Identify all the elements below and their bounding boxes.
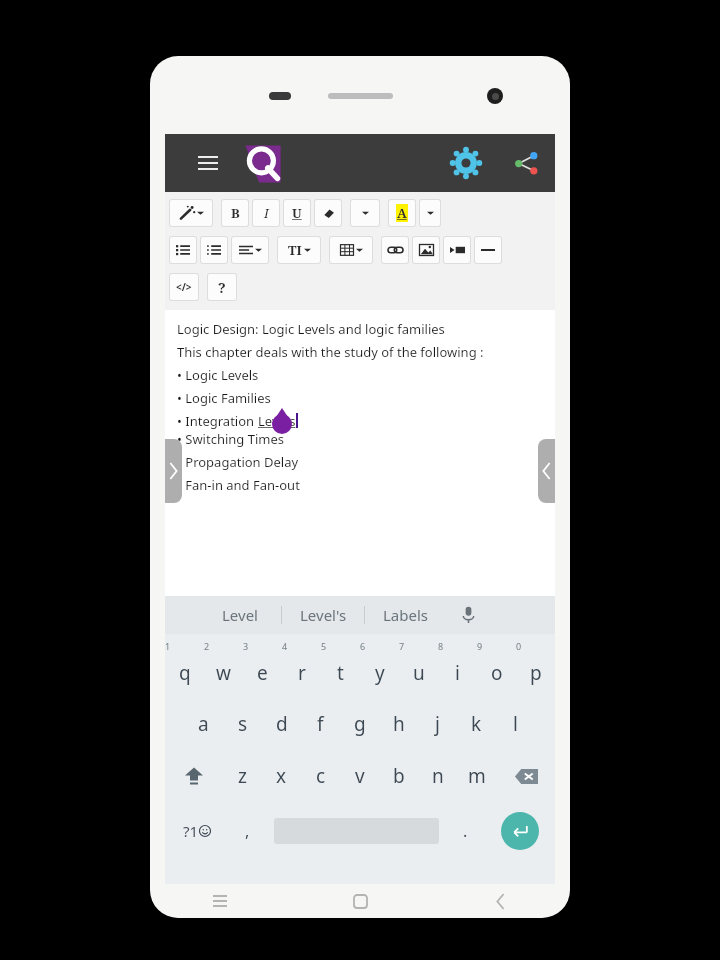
button[interactable]: .: [446, 802, 485, 860]
button[interactable]: 1: [165, 640, 204, 698]
button[interactable]: 0: [516, 640, 555, 698]
button[interactable]: Shift: [165, 750, 223, 802]
staticText: u: [413, 660, 425, 686]
staticText: TI: [288, 241, 302, 259]
staticText: • Fan-in and Fan-out: [177, 476, 300, 494]
button[interactable]: ?: [208, 274, 236, 300]
button[interactable]: [475, 237, 501, 263]
staticText: s: [238, 711, 248, 737]
button[interactable]: k: [457, 698, 496, 750]
staticText: x: [276, 763, 287, 789]
staticText: y: [375, 660, 385, 686]
staticText: f: [317, 711, 324, 737]
button[interactable]: B: [222, 200, 248, 226]
staticText: 7: [399, 640, 405, 652]
button[interactable]: 4: [282, 640, 321, 698]
button[interactable]: I: [253, 200, 279, 226]
staticText: v: [355, 763, 365, 789]
button[interactable]: h: [379, 698, 418, 750]
button[interactable]: l: [496, 698, 535, 750]
button[interactable]: ?1: [165, 802, 228, 860]
button[interactable]: m: [457, 750, 496, 802]
button[interactable]: Level's: [282, 596, 364, 634]
button[interactable]: 5: [321, 640, 360, 698]
button[interactable]: 2: [204, 640, 243, 698]
staticText: k: [471, 711, 482, 737]
button[interactable]: v: [340, 750, 379, 802]
staticText: Logic Design: Logic Levels and logic fam…: [177, 320, 445, 338]
button[interactable]: Backspace: [496, 750, 555, 802]
staticText: ?: [218, 278, 226, 297]
button[interactable]: A: [389, 200, 415, 226]
staticText: </>: [176, 280, 192, 294]
staticText: 6: [360, 640, 366, 652]
button[interactable]: ,: [228, 802, 267, 860]
button[interactable]: [315, 200, 341, 226]
staticText: • Logic Families: [177, 389, 271, 407]
staticText: ?1: [183, 821, 199, 841]
staticText: Level: [222, 605, 258, 625]
button[interactable]: [170, 237, 196, 263]
button[interactable]: n: [418, 750, 457, 802]
staticText: 2: [204, 640, 210, 652]
staticText: This chapter deals with the study of the…: [177, 343, 484, 361]
button[interactable]: g: [340, 698, 379, 750]
button[interactable]: [351, 200, 379, 226]
button[interactable]: [413, 237, 439, 263]
button[interactable]: j: [418, 698, 457, 750]
button[interactable]: 7: [399, 640, 438, 698]
button[interactable]: App logo: [243, 144, 283, 184]
button[interactable]: b: [379, 750, 418, 802]
button[interactable]: Share: [497, 134, 555, 192]
button[interactable]: x: [262, 750, 301, 802]
button[interactable]: 9: [477, 640, 516, 698]
button[interactable]: Previous page: [538, 439, 555, 503]
staticText: c: [316, 763, 326, 789]
staticText: 0: [516, 640, 522, 652]
button[interactable]: d: [262, 698, 301, 750]
staticText: • Propagation Delay: [177, 453, 299, 471]
button[interactable]: [382, 237, 408, 263]
staticText: d: [276, 711, 288, 737]
staticText: • Switching Times: [177, 430, 285, 448]
button[interactable]: s: [223, 698, 262, 750]
button[interactable]: [170, 200, 212, 226]
button[interactable]: Space: [267, 802, 446, 860]
staticText: z: [238, 763, 247, 789]
button[interactable]: </>: [170, 274, 198, 300]
button[interactable]: 3: [243, 640, 282, 698]
button[interactable]: 8: [438, 640, 477, 698]
staticText: .: [463, 820, 468, 842]
button[interactable]: Voice input: [447, 596, 489, 634]
staticText: • Logic Levels: [177, 366, 259, 384]
button[interactable]: Back: [430, 884, 570, 918]
button[interactable]: Recents: [150, 884, 290, 918]
staticText: l: [513, 711, 518, 737]
button[interactable]: Enter: [485, 802, 555, 860]
button[interactable]: c: [301, 750, 340, 802]
button[interactable]: z: [223, 750, 262, 802]
button[interactable]: TI: [278, 237, 320, 263]
button[interactable]: U: [284, 200, 310, 226]
staticText: n: [432, 763, 444, 789]
button[interactable]: [444, 237, 470, 263]
button[interactable]: [201, 237, 227, 263]
staticText: o: [491, 660, 503, 686]
button[interactable]: a: [184, 698, 223, 750]
button[interactable]: Level: [199, 596, 281, 634]
button[interactable]: f: [301, 698, 340, 750]
button[interactable]: [232, 237, 268, 263]
staticText: 1: [165, 640, 171, 652]
staticText: Labels: [383, 605, 429, 625]
button[interactable]: 6: [360, 640, 399, 698]
staticText: • Integration: [177, 412, 258, 430]
staticText: 5: [321, 640, 327, 652]
button[interactable]: Home: [290, 884, 430, 918]
button[interactable]: Labels: [365, 596, 447, 634]
button[interactable]: Settings: [437, 134, 495, 192]
button[interactable]: Menu: [179, 134, 237, 192]
button[interactable]: [420, 200, 440, 226]
button[interactable]: [330, 237, 372, 263]
button[interactable]: Next page: [165, 439, 182, 503]
staticText: I: [264, 204, 269, 222]
